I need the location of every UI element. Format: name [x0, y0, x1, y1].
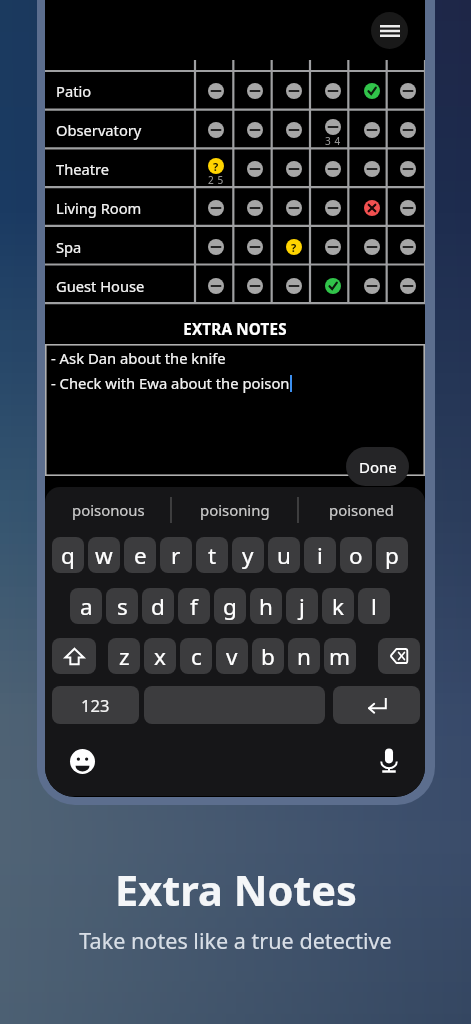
button[interactable]	[391, 71, 425, 110]
button[interactable]	[313, 71, 352, 110]
button[interactable]	[352, 188, 391, 227]
staticText: Spa	[56, 237, 82, 257]
staticText: 3 4	[325, 134, 341, 148]
button[interactable]: 3 4	[313, 110, 352, 149]
button[interactable]: l	[358, 588, 390, 624]
button[interactable]: Emoji	[65, 744, 99, 778]
staticText: t	[208, 540, 217, 571]
button[interactable]	[274, 266, 313, 305]
button[interactable]	[274, 110, 313, 149]
button[interactable]	[235, 149, 274, 188]
button[interactable]	[196, 188, 235, 227]
button[interactable]: poisoned	[298, 487, 425, 533]
button[interactable]	[235, 188, 274, 227]
button[interactable]: a	[70, 588, 102, 624]
button[interactable]: Done	[346, 447, 409, 486]
button[interactable]: m	[324, 638, 356, 674]
button[interactable]	[235, 71, 274, 110]
button[interactable]: d	[142, 588, 174, 624]
button[interactable]	[391, 110, 425, 149]
button[interactable]: Guest House	[45, 266, 196, 305]
button[interactable]: f	[178, 588, 210, 624]
button[interactable]: Theatre	[45, 149, 196, 188]
button[interactable]: y	[232, 537, 264, 573]
button[interactable]	[274, 188, 313, 227]
staticText: Guest House	[56, 276, 145, 296]
button[interactable]: Spa	[45, 227, 196, 266]
staticText: Done	[359, 457, 397, 477]
staticText: i	[317, 540, 323, 571]
button[interactable]: ?	[196, 149, 235, 188]
button[interactable]: 123	[52, 686, 139, 724]
staticText: j	[299, 591, 305, 622]
button[interactable]	[235, 110, 274, 149]
button[interactable]	[352, 227, 391, 266]
staticText: 123	[81, 694, 110, 716]
button[interactable]: h	[250, 588, 282, 624]
button[interactable]: i	[304, 537, 336, 573]
button[interactable]	[391, 188, 425, 227]
button[interactable]: q	[52, 537, 84, 573]
button[interactable]	[352, 71, 391, 110]
button[interactable]: ?	[274, 227, 313, 266]
button[interactable]	[196, 227, 235, 266]
button[interactable]: k	[322, 588, 354, 624]
button[interactable]	[313, 266, 352, 305]
button[interactable]	[391, 266, 425, 305]
button[interactable]	[313, 149, 352, 188]
staticText: q	[61, 540, 75, 571]
button[interactable]: b	[252, 638, 284, 674]
button[interactable]: t	[196, 537, 228, 573]
button[interactable]: Enter	[333, 686, 420, 724]
button[interactable]: z	[108, 638, 140, 674]
button[interactable]: poisonous	[45, 487, 171, 533]
button[interactable]: c	[180, 638, 212, 674]
button[interactable]: u	[268, 537, 300, 573]
button[interactable]	[196, 266, 235, 305]
button[interactable]: Observatory	[45, 110, 196, 149]
button[interactable]: e	[124, 537, 156, 573]
button[interactable]: j	[286, 588, 318, 624]
button[interactable]: Living Room	[45, 188, 196, 227]
button[interactable]: g	[214, 588, 246, 624]
button[interactable]: Voice input	[372, 743, 406, 777]
button[interactable]	[352, 266, 391, 305]
staticText: m	[329, 641, 351, 672]
staticText: h	[259, 591, 273, 622]
button[interactable]	[235, 266, 274, 305]
staticText: - Ask Dan about the knife	[51, 348, 226, 368]
staticText: v	[226, 641, 238, 672]
button[interactable]	[352, 110, 391, 149]
staticText: o	[349, 540, 363, 571]
button[interactable]: Shift	[52, 638, 96, 674]
button[interactable]	[235, 227, 274, 266]
button[interactable]: n	[288, 638, 320, 674]
button[interactable]: w	[88, 537, 120, 573]
button[interactable]: poisoning	[171, 487, 298, 533]
button[interactable]: Backspace	[378, 638, 420, 674]
button[interactable]	[274, 71, 313, 110]
button[interactable]	[313, 227, 352, 266]
staticText: e	[134, 540, 147, 571]
button[interactable]	[391, 149, 425, 188]
button[interactable]: Patio	[45, 71, 196, 110]
staticText: Living Room	[56, 198, 142, 218]
button[interactable]: o	[340, 537, 372, 573]
button[interactable]	[196, 110, 235, 149]
button[interactable]: r	[160, 537, 192, 573]
button[interactable]	[352, 149, 391, 188]
button[interactable]: s	[106, 588, 138, 624]
button[interactable]: x	[144, 638, 176, 674]
button[interactable]: Space	[144, 686, 325, 724]
button[interactable]	[391, 227, 425, 266]
staticText: f	[190, 591, 198, 622]
button[interactable]: Menu	[371, 12, 408, 49]
button[interactable]: v	[216, 638, 248, 674]
button[interactable]	[196, 71, 235, 110]
staticText: - Check with Ewa about the poison	[51, 373, 290, 393]
staticText: poisoned	[329, 500, 394, 520]
staticText: ?	[213, 159, 219, 174]
button[interactable]: p	[376, 537, 408, 573]
button[interactable]	[313, 188, 352, 227]
button[interactable]	[274, 149, 313, 188]
